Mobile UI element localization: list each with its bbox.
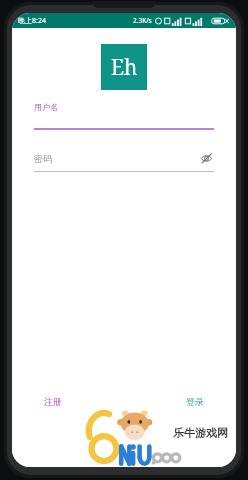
staticText: 密码 [34, 153, 198, 164]
staticText: 2.3K/s [133, 16, 152, 25]
staticText: 登录 [186, 396, 204, 407]
staticText: Eh [111, 53, 138, 82]
button[interactable]: 注册 [44, 396, 62, 407]
button[interactable]: Show password [198, 150, 214, 166]
staticText: 晚上8:24 [18, 16, 46, 26]
staticText: 注册 [44, 396, 62, 407]
staticText: 用户名 [34, 102, 58, 112]
button[interactable]: 登录 [186, 396, 204, 407]
button[interactable]: 用户名 [34, 102, 214, 130]
staticText: 乐牛游戏网 [173, 426, 228, 440]
button[interactable]: 密码 [34, 150, 214, 172]
